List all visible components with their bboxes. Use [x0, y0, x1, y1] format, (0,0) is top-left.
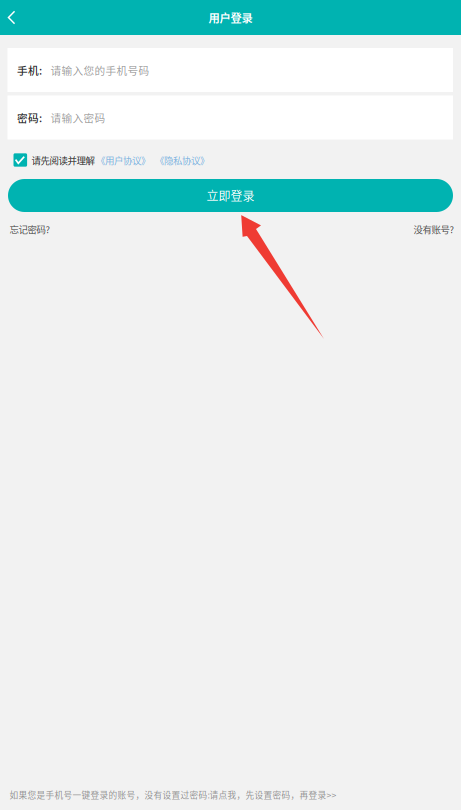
staticText: 《用户协议》 — [96, 153, 150, 167]
button[interactable]: 如果您是手机号一键登录的账号，没有设置过密码:请点我，先设置密码，再登录>> — [9, 788, 336, 801]
button[interactable]: 《用户协议》 — [96, 153, 150, 167]
staticText: 忘记密码? — [9, 222, 49, 236]
button[interactable]: 立即登录 — [8, 179, 453, 212]
staticText: 请输入您的手机号码 — [50, 62, 149, 78]
staticText: 手机: — [17, 62, 42, 78]
staticText: 没有账号? — [413, 222, 453, 236]
button[interactable]: 密码: — [7, 95, 453, 139]
staticText: 如果您是手机号一键登录的账号，没有设置过密码:请点我，先设置密码，再登录>> — [9, 788, 336, 801]
button[interactable]: 同意用户协议 — [13, 153, 27, 167]
staticText: 《隐私协议》 — [155, 153, 209, 167]
staticText: 密码: — [17, 110, 42, 125]
button[interactable]: 忘记密码? — [9, 222, 49, 236]
staticText: 立即登录 — [206, 187, 254, 204]
button[interactable]: 返回 — [0, 0, 29, 35]
staticText: 用户登录 — [208, 9, 252, 26]
staticText: 请输入密码 — [50, 110, 105, 125]
button[interactable]: 《隐私协议》 — [155, 153, 209, 167]
staticText: 请先阅读并理解 — [32, 153, 95, 167]
button[interactable]: 手机: — [7, 48, 453, 92]
button[interactable]: 没有账号? — [413, 222, 453, 236]
